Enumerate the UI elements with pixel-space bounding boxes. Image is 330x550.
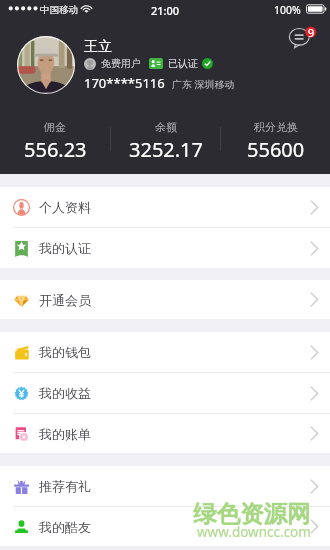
staticText: 广东 深圳移动 <box>172 77 235 91</box>
staticText: 556.23 <box>24 136 87 163</box>
button[interactable]: 我的认证 <box>0 228 330 268</box>
staticText: 余额 <box>155 120 177 134</box>
staticText: 我的酷友 <box>39 519 91 535</box>
button[interactable]: 佣金 <box>0 114 110 163</box>
staticText: 100% <box>274 3 301 17</box>
staticText: 我的收益 <box>39 385 91 401</box>
staticText: 中国移动 <box>40 4 78 16</box>
staticText: 9 <box>307 25 315 41</box>
staticText: 我的认证 <box>39 240 91 256</box>
button[interactable]: 我的收益 <box>0 373 330 413</box>
button[interactable]: 积分兑换 <box>221 114 330 163</box>
staticText: 免费用户 <box>101 57 141 70</box>
staticText: 3252.17 <box>129 136 203 163</box>
staticText: 个人资料 <box>39 199 91 215</box>
staticText: 佣金 <box>44 120 66 134</box>
button[interactable]: 我的钱包 <box>0 332 330 372</box>
staticText: 已认证 <box>168 57 198 70</box>
button[interactable]: 我的酷友 <box>0 507 330 546</box>
button[interactable]: Avatar <box>17 36 75 94</box>
staticText: 我的账单 <box>39 426 91 442</box>
staticText: 170****5116 <box>84 74 165 92</box>
staticText: 55600 <box>247 136 305 163</box>
staticText: 王立 <box>84 38 112 56</box>
button[interactable]: Messages <box>287 25 321 50</box>
button[interactable]: 余额 <box>111 114 220 163</box>
staticText: 绿色资源网 <box>193 499 311 529</box>
button[interactable]: 开通会员 <box>0 280 330 319</box>
staticText: 我的钱包 <box>39 344 91 360</box>
staticText: 积分兑换 <box>254 120 298 134</box>
button[interactable]: 个人资料 <box>0 187 330 227</box>
button[interactable]: 我的账单 <box>0 414 330 453</box>
staticText: 推荐有礼 <box>39 478 91 494</box>
staticText: 开通会员 <box>39 292 91 308</box>
staticText: www.downcc.com <box>197 523 311 541</box>
staticText: 21:00 <box>151 3 180 18</box>
button[interactable]: 推荐有礼 <box>0 466 330 506</box>
